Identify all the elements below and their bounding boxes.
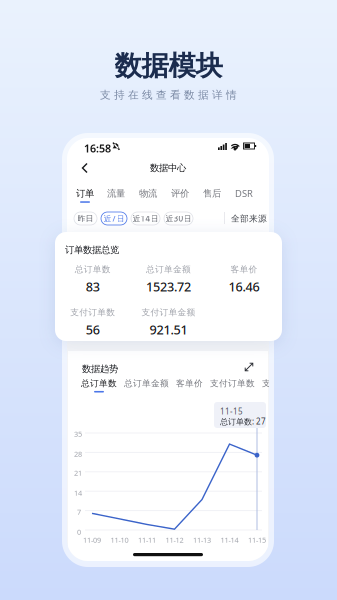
staticText: 总订单金额 (146, 264, 191, 275)
staticText: 支付 (262, 378, 280, 389)
staticText: 0 (77, 527, 81, 537)
staticText: 1523.72 (146, 278, 191, 295)
button[interactable]: 评价 (171, 187, 189, 203)
staticText: 总订单数 (81, 378, 117, 389)
button[interactable]: DSR (235, 187, 253, 203)
staticText: 总订单数 (75, 264, 111, 275)
staticText: 14 (74, 488, 82, 498)
staticText: 11-13 (193, 535, 211, 545)
staticText: 支 持 在 线 查 看 数 据 详 情 (100, 88, 237, 102)
staticText: 7 (77, 507, 81, 517)
button[interactable]: 物流 (139, 187, 157, 203)
button[interactable]: 售后 (203, 187, 221, 203)
staticText: 11-09 (83, 535, 101, 545)
staticText: 客单价 (230, 264, 257, 275)
staticText: 总订单数: 27 (220, 416, 266, 427)
staticText: 流量 (107, 187, 125, 199)
staticText: 21 (74, 468, 82, 478)
button[interactable]: 近7日 (101, 212, 127, 225)
button[interactable]: 支付 (262, 378, 280, 392)
staticText: 客单价 (176, 378, 203, 389)
staticText: 售后 (203, 187, 221, 199)
button[interactable]: 总订单金额 (124, 378, 169, 392)
staticText: 昨日 (77, 213, 93, 224)
staticText: 支付订单金额 (141, 307, 195, 318)
staticText: 评价 (171, 187, 189, 199)
button[interactable]: 订单 (76, 187, 94, 203)
staticText: 近14日 (132, 213, 158, 224)
staticText: 全部来源 (231, 213, 267, 224)
button[interactable]: 昨日 (74, 212, 97, 225)
button[interactable]: 流量 (107, 187, 125, 203)
staticText: 近7日 (103, 213, 124, 224)
staticText: 921.51 (149, 321, 187, 338)
staticText: 物流 (139, 187, 157, 199)
staticText: 近30日 (165, 213, 191, 224)
button[interactable]: Expand chart (243, 361, 255, 373)
staticText: 总订单金额 (124, 378, 169, 389)
staticText: 数据模块 (114, 49, 222, 83)
button[interactable]: 近30日 (164, 212, 193, 225)
staticText: DSR (235, 187, 253, 200)
staticText: 11-15 (220, 406, 243, 417)
staticText: 订单数据总览 (65, 244, 119, 256)
staticText: 35 (74, 429, 82, 439)
staticText: 支付订单数 (70, 307, 115, 318)
staticText: 11-12 (166, 535, 184, 545)
staticText: 56 (86, 321, 100, 338)
staticText: 83 (86, 278, 100, 295)
button[interactable]: 全部来源 (231, 212, 277, 225)
staticText: 11-11 (138, 535, 156, 545)
staticText: 11-14 (221, 535, 239, 545)
staticText: 16.46 (228, 278, 259, 295)
staticText: 数据趋势 (82, 363, 118, 375)
staticText: 11-10 (110, 535, 128, 545)
button[interactable]: Back (76, 159, 94, 177)
button[interactable]: 客单价 (176, 378, 203, 392)
button[interactable]: 总订单数 (81, 378, 117, 392)
button[interactable]: 近14日 (131, 212, 160, 225)
staticText: 数据中心 (150, 162, 186, 174)
staticText: 订单 (76, 187, 94, 199)
button[interactable]: 支付订单数 (210, 378, 255, 392)
staticText: 28 (74, 449, 82, 459)
staticText: 16:58 (84, 141, 111, 155)
staticText: 支付订单数 (210, 378, 255, 389)
staticText: 11-15 (248, 535, 266, 545)
